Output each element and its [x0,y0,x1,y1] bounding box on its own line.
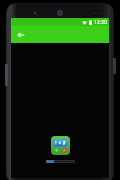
button[interactable] [51,136,70,155]
button[interactable]: Back [11,26,109,43]
button[interactable]: Back [16,30,26,40]
staticText: 12:30 [94,19,107,26]
